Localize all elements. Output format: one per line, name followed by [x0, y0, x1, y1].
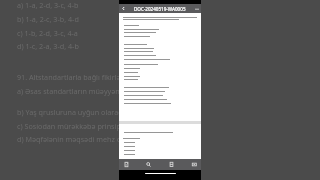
button[interactable]: View mode: [185, 159, 203, 170]
staticText: 91. Altstandartlarla bağlı fikirlər: [17, 72, 124, 82]
staticText: DOC-20240519-WA0005: [134, 6, 186, 12]
button[interactable]: More options: [192, 4, 201, 13]
button[interactable]: Back: [119, 4, 128, 13]
button[interactable]: Pages: [117, 159, 135, 170]
staticText: a) Əsas standartların müəyyən: [17, 86, 120, 96]
button[interactable]: Bookmarks: [162, 159, 180, 170]
button[interactable]: Search: [139, 159, 157, 170]
staticText: c) Sosiodan mürəkkəbə prinsipi: [17, 121, 123, 131]
staticText: b) 1-a, 2-c, 3-b, 4-d: [17, 14, 79, 24]
staticText: b) Yaş qrusluruna uyğun olaraq: [17, 107, 123, 117]
staticText: c) 1-b, 2-d, 3-c, 4-a: [17, 28, 78, 38]
staticText: a) 1-a, 2-d, 3-c, 4-b: [17, 0, 79, 10]
staticText: d) Məqfələnin məqsədi mehz ol: [17, 134, 123, 144]
staticText: d) 1-c, 2-a, 3-d, 4-b: [17, 41, 79, 51]
